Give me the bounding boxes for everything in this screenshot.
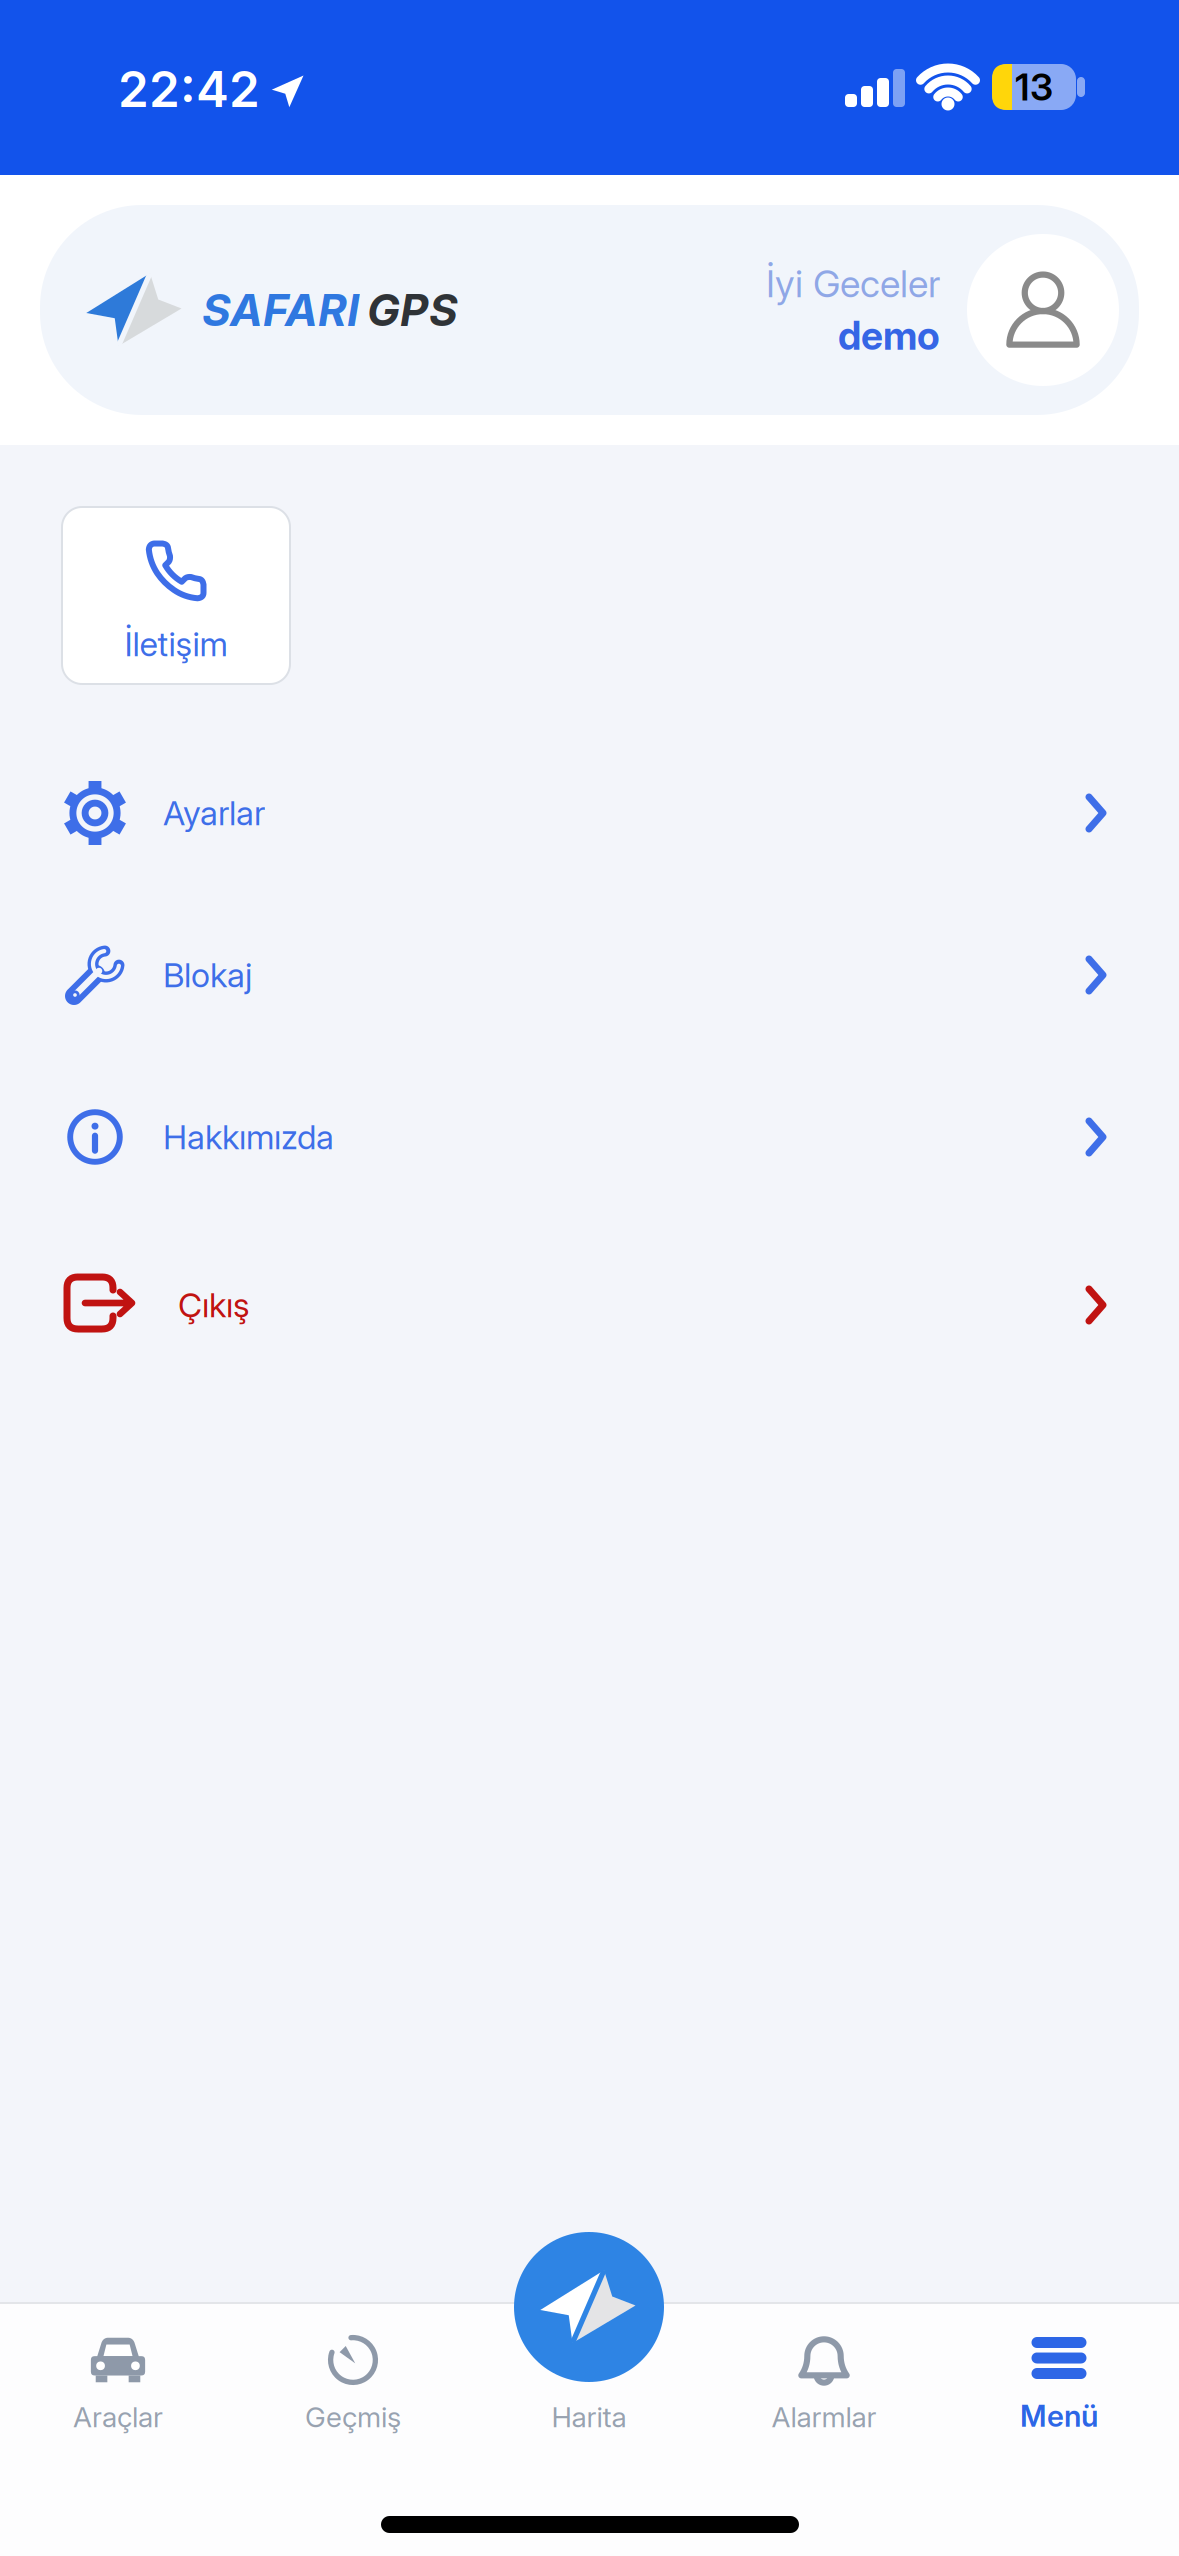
staticText: Alarmlar (771, 2400, 876, 2434)
staticText: İyi Geceler (766, 261, 940, 306)
button[interactable]: Harita (494, 2230, 684, 2460)
button[interactable]: Çıkış (40, 1245, 1139, 1365)
button[interactable]: Blokaj (40, 915, 1139, 1035)
staticText: demo (838, 312, 940, 359)
button[interactable]: Menü (959, 2310, 1159, 2460)
staticText: Çıkış (178, 1285, 250, 1325)
button[interactable]: Profil (967, 234, 1119, 386)
staticText: Menü (1020, 2398, 1098, 2434)
staticText: Hakkımızda (163, 1117, 334, 1157)
button[interactable]: Araçlar (18, 2310, 218, 2460)
staticText: 13 (1015, 64, 1053, 110)
staticText: Ayarlar (163, 793, 265, 833)
button[interactable]: Ayarlar (40, 753, 1139, 873)
button[interactable]: Alarmlar (724, 2310, 924, 2460)
staticText: Harita (551, 2400, 626, 2434)
button[interactable]: İletişim (62, 507, 290, 684)
staticText: SAFARI (202, 283, 359, 337)
button[interactable]: Geçmiş (253, 2310, 453, 2460)
staticText: Geçmiş (305, 2400, 401, 2434)
staticText: GPS (367, 283, 458, 337)
staticText: 22:42 (118, 59, 260, 119)
staticText: Araçlar (73, 2400, 163, 2434)
button[interactable]: Hakkımızda (40, 1077, 1139, 1197)
staticText: İletişim (124, 624, 227, 664)
staticText: Blokaj (163, 955, 252, 995)
